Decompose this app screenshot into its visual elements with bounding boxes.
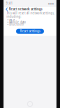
staticText: ▪▪▪ <box>48 2 54 5</box>
staticText: Reset settings <box>20 29 40 33</box>
staticText: Wi-Fi <box>9 18 15 21</box>
button[interactable]: Back <box>5 7 8 11</box>
button[interactable]: Reset settings <box>16 29 44 34</box>
staticText: Reset network settings <box>9 7 42 11</box>
staticText: This will reset all network settings, in… <box>6 11 54 19</box>
staticText: 9:41 <box>6 2 13 5</box>
staticText: Bluetooth <box>9 23 24 26</box>
staticText: Mobile data <box>9 20 25 24</box>
